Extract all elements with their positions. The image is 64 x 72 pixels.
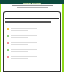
button[interactable] [7, 33, 59, 39]
button[interactable] [7, 47, 59, 53]
button[interactable] [7, 54, 59, 60]
button[interactable] [7, 26, 59, 32]
button[interactable] [7, 40, 59, 46]
staticText: spread the love, [23, 1, 42, 4]
